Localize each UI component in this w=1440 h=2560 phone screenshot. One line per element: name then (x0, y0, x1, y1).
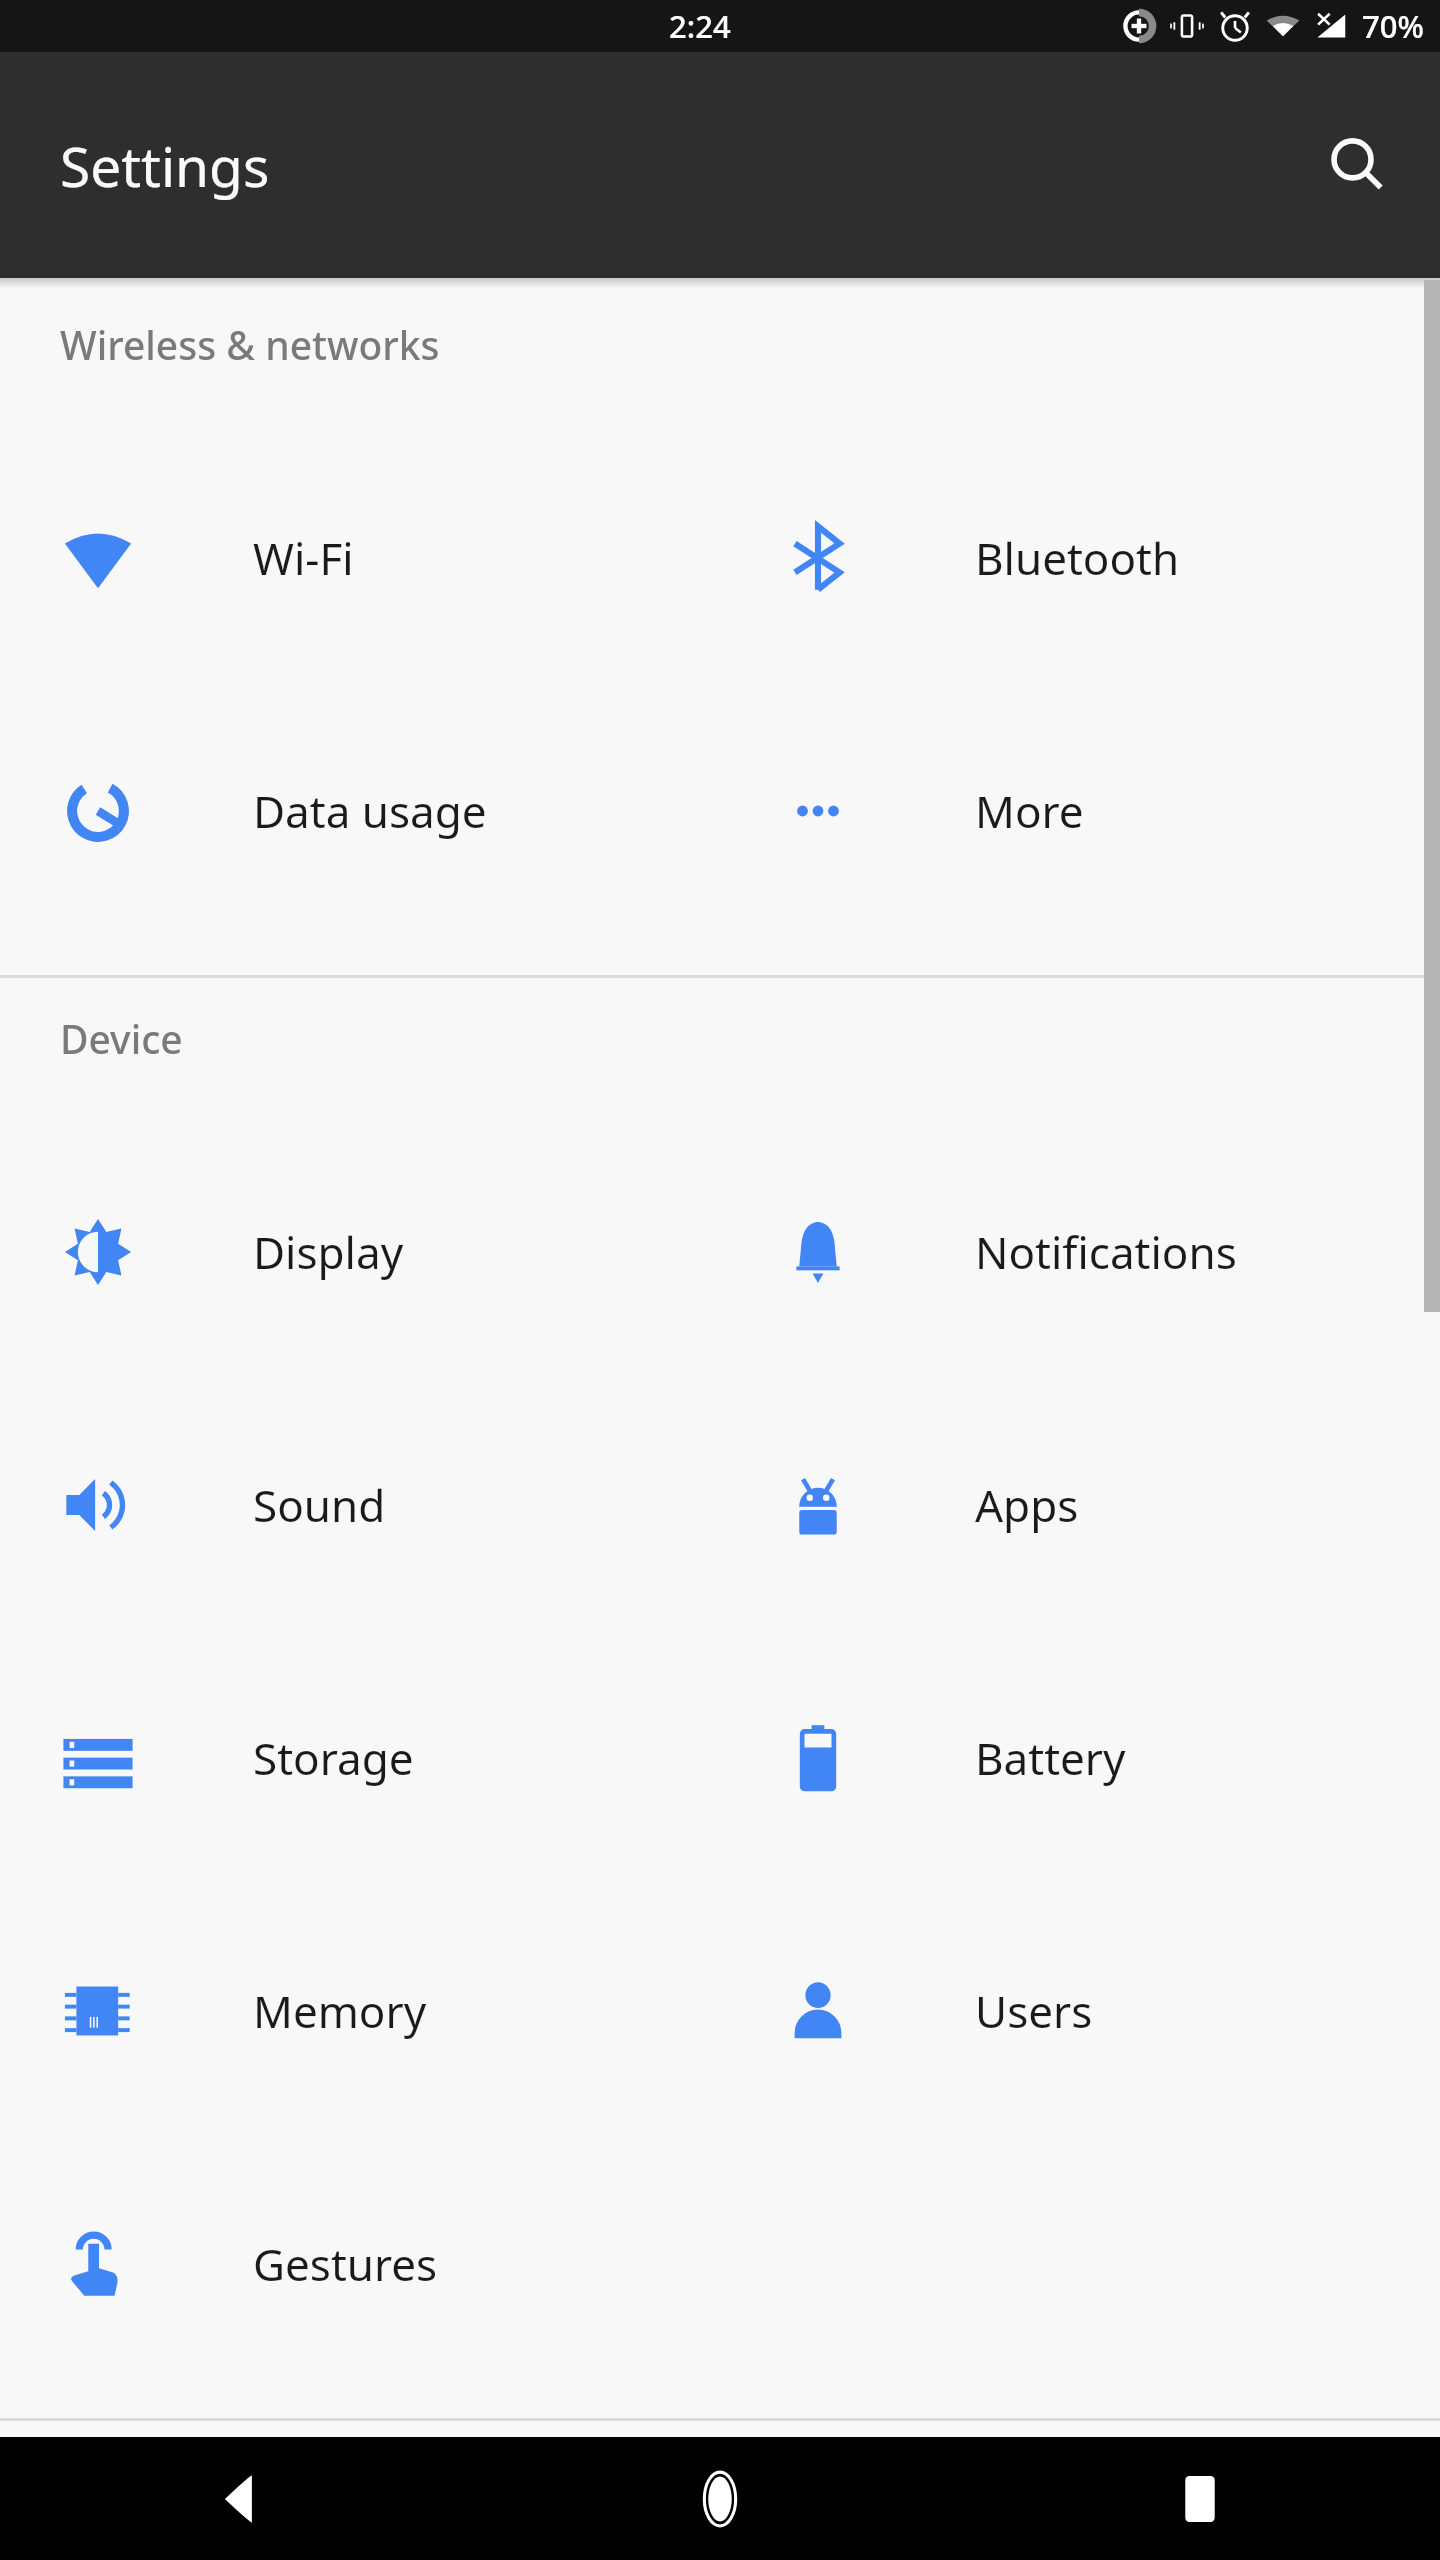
button[interactable]: Display (0, 1125, 720, 1378)
staticText: Wi-Fi (253, 528, 354, 588)
staticText: Wireless & networks (60, 318, 440, 371)
button[interactable]: Notifications (720, 1125, 1440, 1378)
button[interactable]: More (720, 684, 1440, 937)
button[interactable]: Gestures (0, 2137, 720, 2390)
staticText: Apps (975, 1475, 1079, 1535)
staticText: Battery (975, 1728, 1126, 1788)
button[interactable]: Back (0, 2437, 480, 2560)
button[interactable]: Recent apps (960, 2437, 1440, 2560)
button[interactable]: Battery (720, 1631, 1440, 1884)
button[interactable]: Memory (0, 1884, 720, 2137)
staticText: Settings (60, 128, 270, 203)
staticText: Gestures (253, 2234, 438, 2294)
button[interactable]: Sound (0, 1378, 720, 1631)
staticText: More (975, 781, 1084, 841)
staticText: 70% (1362, 5, 1424, 47)
staticText: Device (60, 1012, 183, 1065)
button[interactable]: Users (720, 1884, 1440, 2137)
staticText: Data usage (253, 781, 487, 841)
staticText: Sound (253, 1475, 386, 1535)
button[interactable]: Storage (0, 1631, 720, 1884)
staticText: 2:24 (669, 5, 731, 47)
button[interactable]: Bluetooth (720, 431, 1440, 684)
button[interactable]: Wi-Fi (0, 431, 720, 684)
staticText: Users (975, 1981, 1093, 2041)
staticText: Display (253, 1222, 404, 1282)
button[interactable]: Home (480, 2437, 960, 2560)
button[interactable]: Data usage (0, 684, 720, 937)
staticText: Bluetooth (975, 528, 1180, 588)
button[interactable]: Apps (720, 1378, 1440, 1631)
staticText: Notifications (975, 1222, 1237, 1282)
staticText: Memory (253, 1981, 427, 2041)
staticText: Storage (253, 1728, 414, 1788)
button[interactable]: Search (1302, 110, 1412, 220)
